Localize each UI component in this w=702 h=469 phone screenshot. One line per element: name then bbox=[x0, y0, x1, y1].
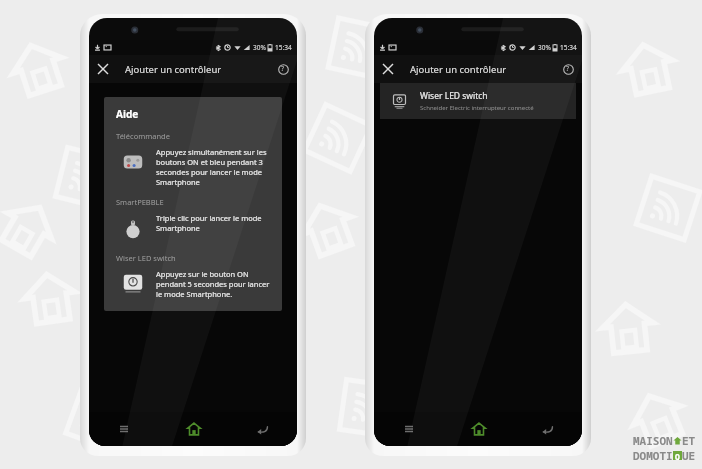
staticText: UE bbox=[682, 448, 696, 463]
staticText: Q bbox=[675, 451, 680, 460]
staticText: Ajouter un contrôleur bbox=[410, 63, 507, 76]
staticText: Aide bbox=[116, 107, 139, 121]
button[interactable]: Aide bbox=[104, 97, 282, 311]
staticText: DOMOTI bbox=[633, 448, 673, 463]
staticText: Télécommande bbox=[116, 131, 170, 141]
staticText: ET bbox=[682, 433, 696, 448]
button[interactable]: Fermer bbox=[89, 55, 117, 83]
staticText: Triple clic pour lancer le mode Smartpho… bbox=[156, 213, 262, 233]
staticText: MAISON bbox=[633, 433, 673, 448]
staticText: 30% bbox=[253, 43, 266, 52]
staticText: ? bbox=[566, 64, 570, 74]
staticText: 30% bbox=[538, 43, 551, 52]
button[interactable]: Aide bbox=[554, 55, 582, 83]
staticText: 15:34 bbox=[275, 43, 292, 52]
button[interactable]: Wiser LED switch bbox=[380, 83, 576, 119]
staticText: Ajouter un contrôleur bbox=[125, 63, 222, 76]
button[interactable]: Menu bbox=[89, 412, 159, 446]
button[interactable]: Aide bbox=[269, 55, 297, 83]
staticText: Wiser LED switch bbox=[116, 253, 176, 263]
staticText: 15:34 bbox=[560, 43, 577, 52]
button[interactable]: Accueil bbox=[159, 412, 228, 446]
staticText: SmartPEBBLE bbox=[116, 197, 164, 207]
button[interactable]: Retour bbox=[228, 412, 297, 446]
button[interactable]: Menu bbox=[374, 412, 444, 446]
staticText: Appuyez sur le bouton ON pendant 5 secon… bbox=[156, 269, 270, 299]
button[interactable]: Accueil bbox=[444, 412, 513, 446]
button[interactable]: Fermer bbox=[374, 55, 402, 83]
button[interactable]: Retour bbox=[513, 412, 582, 446]
staticText: Schneider Electric interrupteur connecté bbox=[420, 104, 534, 112]
staticText: Appuyez simultanément sur les boutons ON… bbox=[156, 147, 267, 187]
staticText: Wiser LED switch bbox=[420, 90, 488, 102]
staticText: ? bbox=[281, 64, 285, 74]
